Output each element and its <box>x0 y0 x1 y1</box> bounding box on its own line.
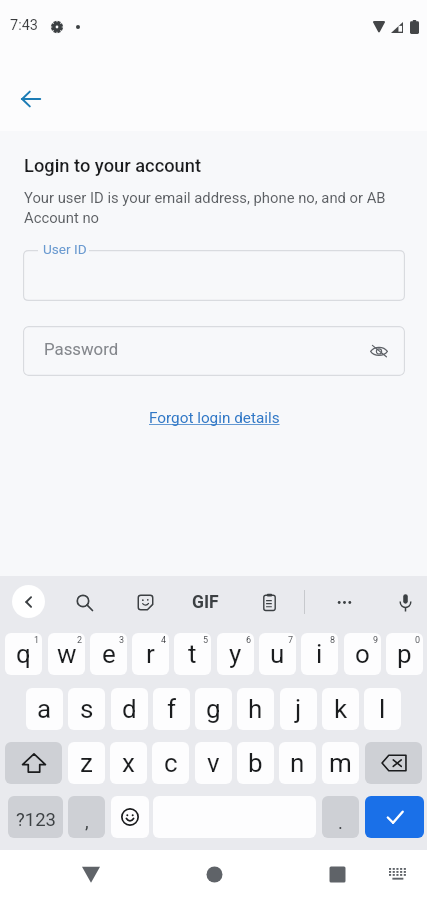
button[interactable]: Enter <box>365 796 424 838</box>
button[interactable]: g <box>195 688 232 730</box>
button[interactable]: Backspace <box>365 742 422 784</box>
button[interactable]: i <box>301 633 338 675</box>
button[interactable]: Home <box>190 850 238 898</box>
staticText: 8 <box>330 635 336 646</box>
button[interactable]: s <box>68 688 105 730</box>
button[interactable]: Voice input <box>389 586 421 618</box>
staticText: z <box>80 748 93 778</box>
staticText: a <box>37 694 52 724</box>
staticText: 1 <box>34 635 40 646</box>
staticText: j <box>295 694 302 724</box>
staticText: 4 <box>161 635 167 646</box>
staticText: q <box>16 639 31 669</box>
staticText: n <box>290 748 305 778</box>
staticText: 2 <box>77 635 83 646</box>
button[interactable]: Shift <box>5 742 62 784</box>
button[interactable]: , <box>68 796 105 838</box>
button[interactable]: Back <box>12 585 45 618</box>
staticText: r <box>146 639 155 669</box>
staticText: Forgot login details <box>149 409 280 427</box>
staticText: 7:43 <box>10 17 38 34</box>
button[interactable]: c <box>152 742 189 784</box>
staticText: Password <box>44 339 119 359</box>
button[interactable]: . <box>322 796 359 838</box>
button[interactable]: Forgot login details <box>139 404 289 432</box>
staticText: e <box>102 639 116 669</box>
button[interactable]: More options <box>328 586 360 618</box>
staticText: h <box>248 694 263 724</box>
staticText: g <box>206 694 221 724</box>
button[interactable]: Password <box>23 326 405 376</box>
button[interactable]: e <box>90 633 127 675</box>
button[interactable]: q <box>5 633 42 675</box>
staticText: ?123 <box>16 809 56 831</box>
button[interactable]: r <box>132 633 169 675</box>
staticText: u <box>270 639 285 669</box>
staticText: 6 <box>246 635 252 646</box>
button[interactable]: Recent apps <box>313 850 361 898</box>
staticText: GIF <box>192 592 219 613</box>
button[interactable]: d <box>111 688 148 730</box>
staticText: t <box>188 639 197 669</box>
staticText: c <box>164 748 178 778</box>
button[interactable]: n <box>279 742 316 784</box>
staticText: s <box>80 694 94 724</box>
staticText: y <box>229 639 242 669</box>
staticText: 5 <box>203 635 209 646</box>
staticText: , <box>85 811 89 833</box>
staticText: Login to your account <box>24 155 202 176</box>
staticText: Your user ID is your email address, phon… <box>24 189 386 227</box>
button[interactable]: k <box>322 688 359 730</box>
button[interactable]: w <box>48 633 85 675</box>
button[interactable]: y <box>217 633 254 675</box>
button[interactable]: h <box>237 688 274 730</box>
staticText: v <box>207 748 220 778</box>
button[interactable]: Emoji <box>111 796 149 838</box>
button[interactable]: Switch keyboard <box>378 855 418 895</box>
staticText: w <box>57 639 77 669</box>
button[interactable]: Stickers <box>129 586 161 618</box>
staticText: k <box>334 694 348 724</box>
button[interactable]: ?123 <box>8 796 63 838</box>
button[interactable]: p <box>386 633 423 675</box>
staticText: f <box>167 694 177 724</box>
staticText: 9 <box>373 635 379 646</box>
staticText: 3 <box>119 635 125 646</box>
staticText: b <box>248 748 263 778</box>
button[interactable]: a <box>26 688 63 730</box>
button[interactable]: Back <box>7 75 55 123</box>
staticText: x <box>122 748 135 778</box>
staticText: i <box>316 639 323 669</box>
button[interactable]: Clipboard <box>253 586 285 618</box>
button[interactable]: o <box>344 633 381 675</box>
staticText: 7 <box>288 635 294 646</box>
button[interactable]: l <box>364 688 401 730</box>
button[interactable]: Search <box>68 586 100 618</box>
staticText: 0 <box>415 635 421 646</box>
staticText: l <box>379 694 386 724</box>
staticText: p <box>397 639 412 669</box>
button[interactable]: b <box>237 742 274 784</box>
staticText: User ID <box>43 241 87 257</box>
button[interactable]: m <box>322 742 359 784</box>
button[interactable]: Show password <box>363 335 395 367</box>
button[interactable]: z <box>68 742 105 784</box>
staticText: o <box>355 639 370 669</box>
button[interactable]: f <box>153 688 190 730</box>
staticText: d <box>122 694 137 724</box>
button[interactable]: User ID <box>23 250 405 301</box>
button[interactable]: j <box>280 688 317 730</box>
staticText: . <box>338 812 343 834</box>
button[interactable]: v <box>195 742 232 784</box>
button[interactable]: t <box>174 633 211 675</box>
button[interactable]: Hide keyboard <box>67 850 115 898</box>
button[interactable]: x <box>110 742 147 784</box>
staticText: m <box>329 748 352 778</box>
button[interactable]: GIF <box>185 591 225 613</box>
button[interactable]: u <box>259 633 296 675</box>
